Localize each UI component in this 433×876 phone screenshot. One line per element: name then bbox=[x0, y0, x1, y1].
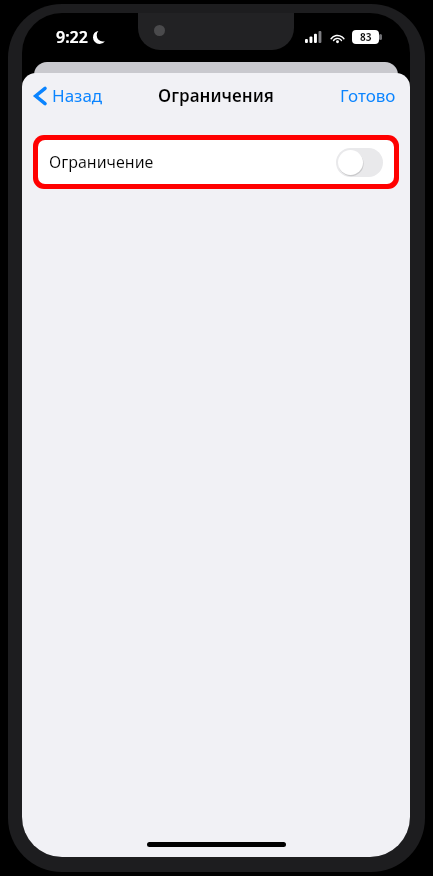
staticText: 83 bbox=[360, 30, 372, 44]
button[interactable]: Готово bbox=[330, 78, 410, 113]
staticText: Ограничения bbox=[158, 84, 274, 107]
button[interactable]: Ограничение bbox=[38, 140, 394, 184]
button[interactable]: Ограничение toggle bbox=[336, 148, 383, 177]
staticText: 9:22 bbox=[56, 26, 88, 48]
button[interactable]: Назад bbox=[22, 78, 113, 113]
staticText: Готово bbox=[340, 84, 396, 107]
staticText: Назад bbox=[52, 84, 103, 107]
staticText: Ограничение bbox=[49, 151, 154, 173]
